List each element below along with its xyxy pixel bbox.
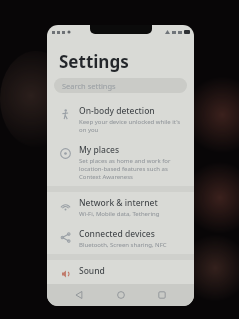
staticText: Set places as home and work for location… bbox=[79, 157, 186, 181]
button[interactable]: BODY bbox=[47, 100, 194, 139]
button[interactable]: PLACE bbox=[47, 139, 194, 186]
button[interactable]: SHARE bbox=[47, 223, 194, 254]
other: PLACE bbox=[60, 148, 71, 159]
staticText: Connected devices bbox=[79, 228, 155, 240]
button[interactable]: Recent apps bbox=[152, 285, 172, 305]
button[interactable]: Search settings bbox=[54, 78, 187, 93]
other: WIFI bbox=[60, 201, 71, 212]
staticText: On-body detection bbox=[79, 105, 155, 117]
button[interactable]: Back bbox=[69, 285, 89, 305]
staticText: Sound bbox=[79, 265, 105, 277]
other: BODY bbox=[60, 109, 71, 120]
button[interactable]: WIFI bbox=[47, 192, 194, 223]
staticText: Search settings bbox=[62, 81, 116, 91]
staticText: Wi-Fi, Mobile data, Tethering bbox=[79, 210, 160, 218]
button[interactable]: SOUND bbox=[47, 260, 194, 284]
staticText: Settings bbox=[59, 50, 129, 73]
other: SHARE bbox=[60, 232, 71, 243]
staticText: Bluetooth, Screen sharing, NFC bbox=[79, 241, 167, 249]
button[interactable]: Home bbox=[111, 285, 131, 305]
other: SOUND bbox=[60, 269, 71, 279]
staticText: Network & internet bbox=[79, 197, 158, 209]
staticText: My places bbox=[79, 144, 120, 156]
staticText: Keep your device unlocked while it's on … bbox=[79, 118, 186, 134]
